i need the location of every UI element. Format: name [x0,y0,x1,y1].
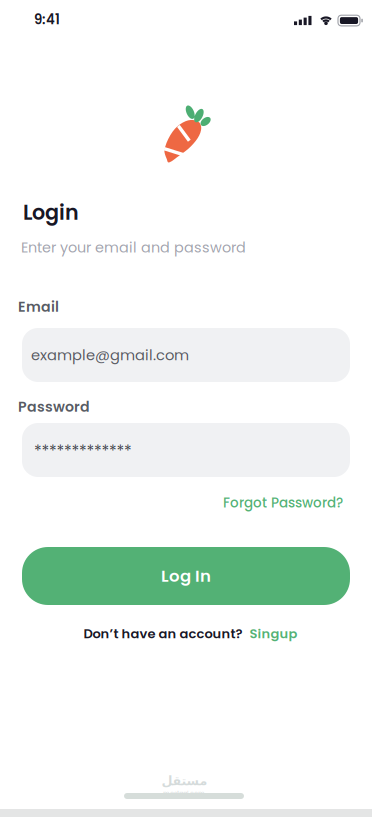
button[interactable]: Singup [249,624,297,643]
staticText: Singup [249,624,297,643]
button[interactable]: example@gmail.com [22,328,350,382]
staticText: Password [18,397,90,417]
staticText: Forgot Password? [223,493,343,512]
staticText: Login [23,198,79,227]
button[interactable]: ************* [22,423,350,477]
staticText: mostaql.com [163,789,205,798]
staticText: مستقل [161,773,207,788]
staticText: Enter your email and password [21,237,246,257]
staticText: 9:41 [34,10,60,29]
staticText: ************* [34,440,132,462]
button[interactable]: Forgot Password? [223,493,343,512]
staticText: Don’t have an account? [83,624,242,643]
button[interactable]: Log In [22,547,350,605]
staticText: Log In [161,564,211,587]
staticText: example@gmail.com [31,345,189,365]
staticText: Email [18,297,59,317]
